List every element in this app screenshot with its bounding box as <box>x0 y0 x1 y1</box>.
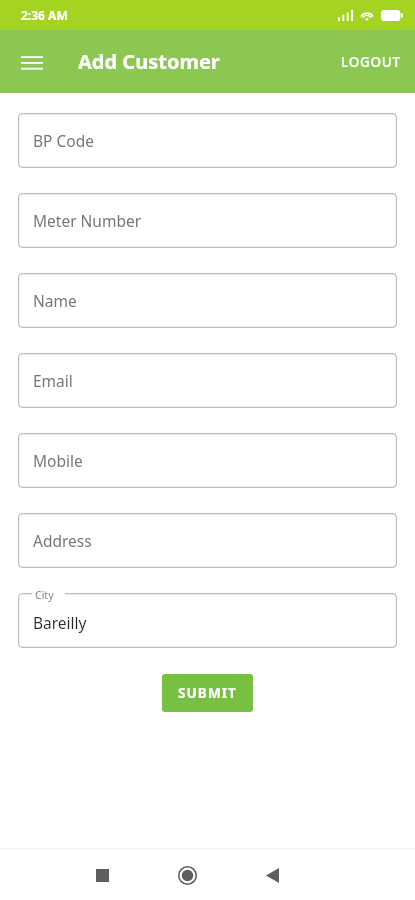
staticText: Email <box>33 370 73 391</box>
staticText: LOGOUT <box>341 53 401 71</box>
staticText: BP Code <box>33 130 94 151</box>
staticText: 2:36 AM <box>21 7 68 23</box>
button[interactable]: SUBMIT <box>162 674 253 712</box>
button[interactable]: Open navigation menu <box>12 42 52 82</box>
staticText: Bareilly <box>33 612 87 633</box>
button[interactable]: LOGOUT <box>327 41 415 83</box>
button[interactable]: Email <box>18 353 397 408</box>
staticText: City <box>35 588 54 602</box>
staticText: Meter Number <box>33 210 142 231</box>
button[interactable]: Home <box>165 853 209 897</box>
button[interactable]: Recent apps <box>80 853 124 897</box>
staticText: Address <box>33 530 92 551</box>
staticText: SUBMIT <box>178 684 237 702</box>
button[interactable]: Meter Number <box>18 193 397 248</box>
button[interactable]: BP Code <box>18 113 397 168</box>
staticText: Mobile <box>33 450 83 471</box>
button[interactable]: Name <box>18 273 397 328</box>
staticText: Name <box>33 290 77 311</box>
staticText: Add Customer <box>78 48 220 75</box>
button[interactable]: Bareilly <box>18 593 397 648</box>
button[interactable]: Mobile <box>18 433 397 488</box>
button[interactable]: Address <box>18 513 397 568</box>
button[interactable]: Back <box>250 853 294 897</box>
